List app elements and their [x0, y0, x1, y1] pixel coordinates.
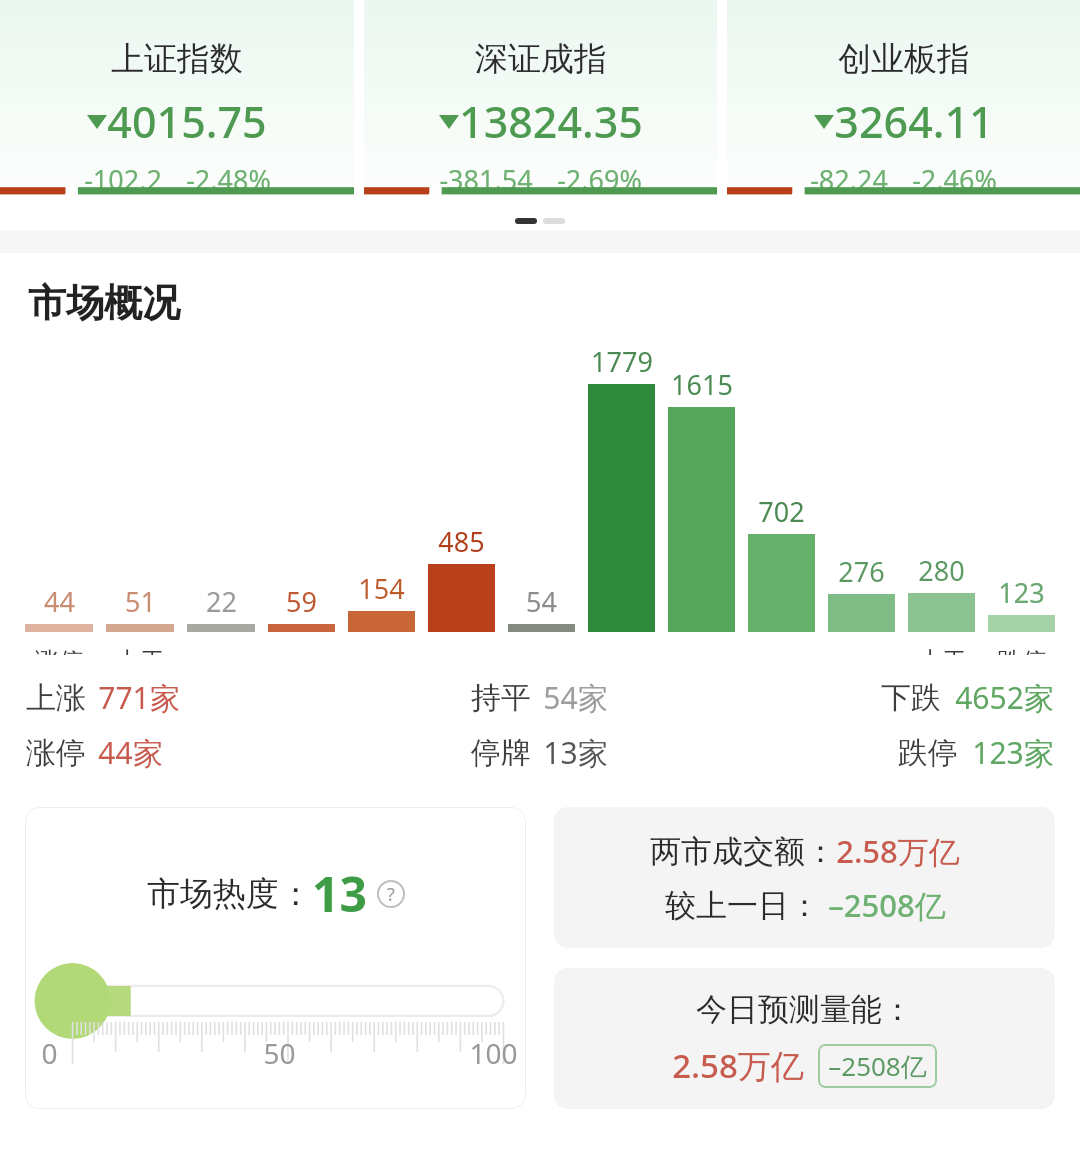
button[interactable]: 今日预测量能：	[554, 968, 1055, 1109]
staticText: 下跌	[881, 679, 941, 717]
button[interactable]: 两市成交额：	[554, 807, 1055, 948]
staticText: 123家	[972, 732, 1054, 773]
button[interactable]: 上证指数	[0, 0, 354, 198]
staticText: 涨停	[26, 734, 86, 772]
staticText: 13家	[543, 732, 608, 773]
button[interactable]: 市场热度说明	[377, 880, 405, 908]
staticText: -2.46%	[912, 161, 997, 198]
staticText: -82.24	[810, 161, 888, 198]
staticText: 跌停	[997, 646, 1047, 655]
staticText: -2.48%	[186, 161, 271, 198]
staticText: 较上一日：	[665, 886, 820, 925]
staticText: 创业板指	[838, 38, 970, 80]
staticText: 1779	[591, 343, 653, 380]
staticText: 771家	[98, 677, 180, 718]
staticText: 100	[469, 1034, 518, 1072]
staticText: -102.2	[84, 161, 162, 198]
staticText: 持平	[471, 679, 531, 717]
staticText: 4015.75	[107, 92, 267, 151]
staticText: 280	[918, 552, 965, 589]
staticText: 13824.35	[459, 92, 643, 151]
staticText: 485	[438, 523, 485, 560]
staticText: 上证指数	[111, 38, 243, 80]
staticText: 54	[526, 583, 557, 620]
staticText: –2508亿	[828, 1048, 927, 1084]
staticText: 市场概况	[28, 279, 180, 327]
staticText: 市场热度：	[147, 873, 312, 915]
staticText: 13	[312, 861, 367, 926]
staticText: 54家	[543, 677, 608, 718]
staticText: 4652家	[955, 677, 1054, 718]
staticText: 123	[998, 574, 1045, 611]
staticText: 深证成指	[475, 38, 607, 80]
staticText: 51	[125, 583, 156, 620]
staticText: 702	[758, 493, 805, 530]
staticText: 0	[41, 1034, 58, 1072]
staticText: 涨停	[34, 646, 84, 655]
staticText: 1615	[671, 366, 733, 403]
staticText: 59	[286, 583, 317, 620]
staticText: 22	[206, 583, 237, 620]
staticText: –2508亿	[828, 884, 946, 926]
staticText: -381.54	[439, 161, 533, 198]
staticText: 小于	[917, 646, 967, 655]
staticText: ?	[387, 882, 395, 907]
button[interactable]: 市场热度：	[25, 807, 526, 1109]
staticText: 跌停	[898, 734, 958, 772]
staticText: 停牌	[471, 734, 531, 772]
staticText: 大于	[115, 646, 165, 655]
button[interactable]: 创业板指	[727, 0, 1080, 198]
staticText: 2.58万亿	[672, 1043, 804, 1088]
button[interactable]: 深证成指	[364, 0, 717, 198]
staticText: 今日预测量能：	[696, 990, 913, 1029]
staticText: 44家	[98, 732, 163, 773]
staticText: 44	[44, 583, 75, 620]
staticText: 276	[838, 553, 885, 590]
staticText: 两市成交额：	[650, 832, 836, 871]
staticText: 上涨	[26, 679, 86, 717]
staticText: 154	[358, 570, 405, 607]
staticText: -2.69%	[557, 161, 642, 198]
staticText: 2.58万亿	[836, 830, 960, 872]
staticText: 50	[263, 1034, 296, 1072]
staticText: 3264.11	[834, 92, 994, 151]
